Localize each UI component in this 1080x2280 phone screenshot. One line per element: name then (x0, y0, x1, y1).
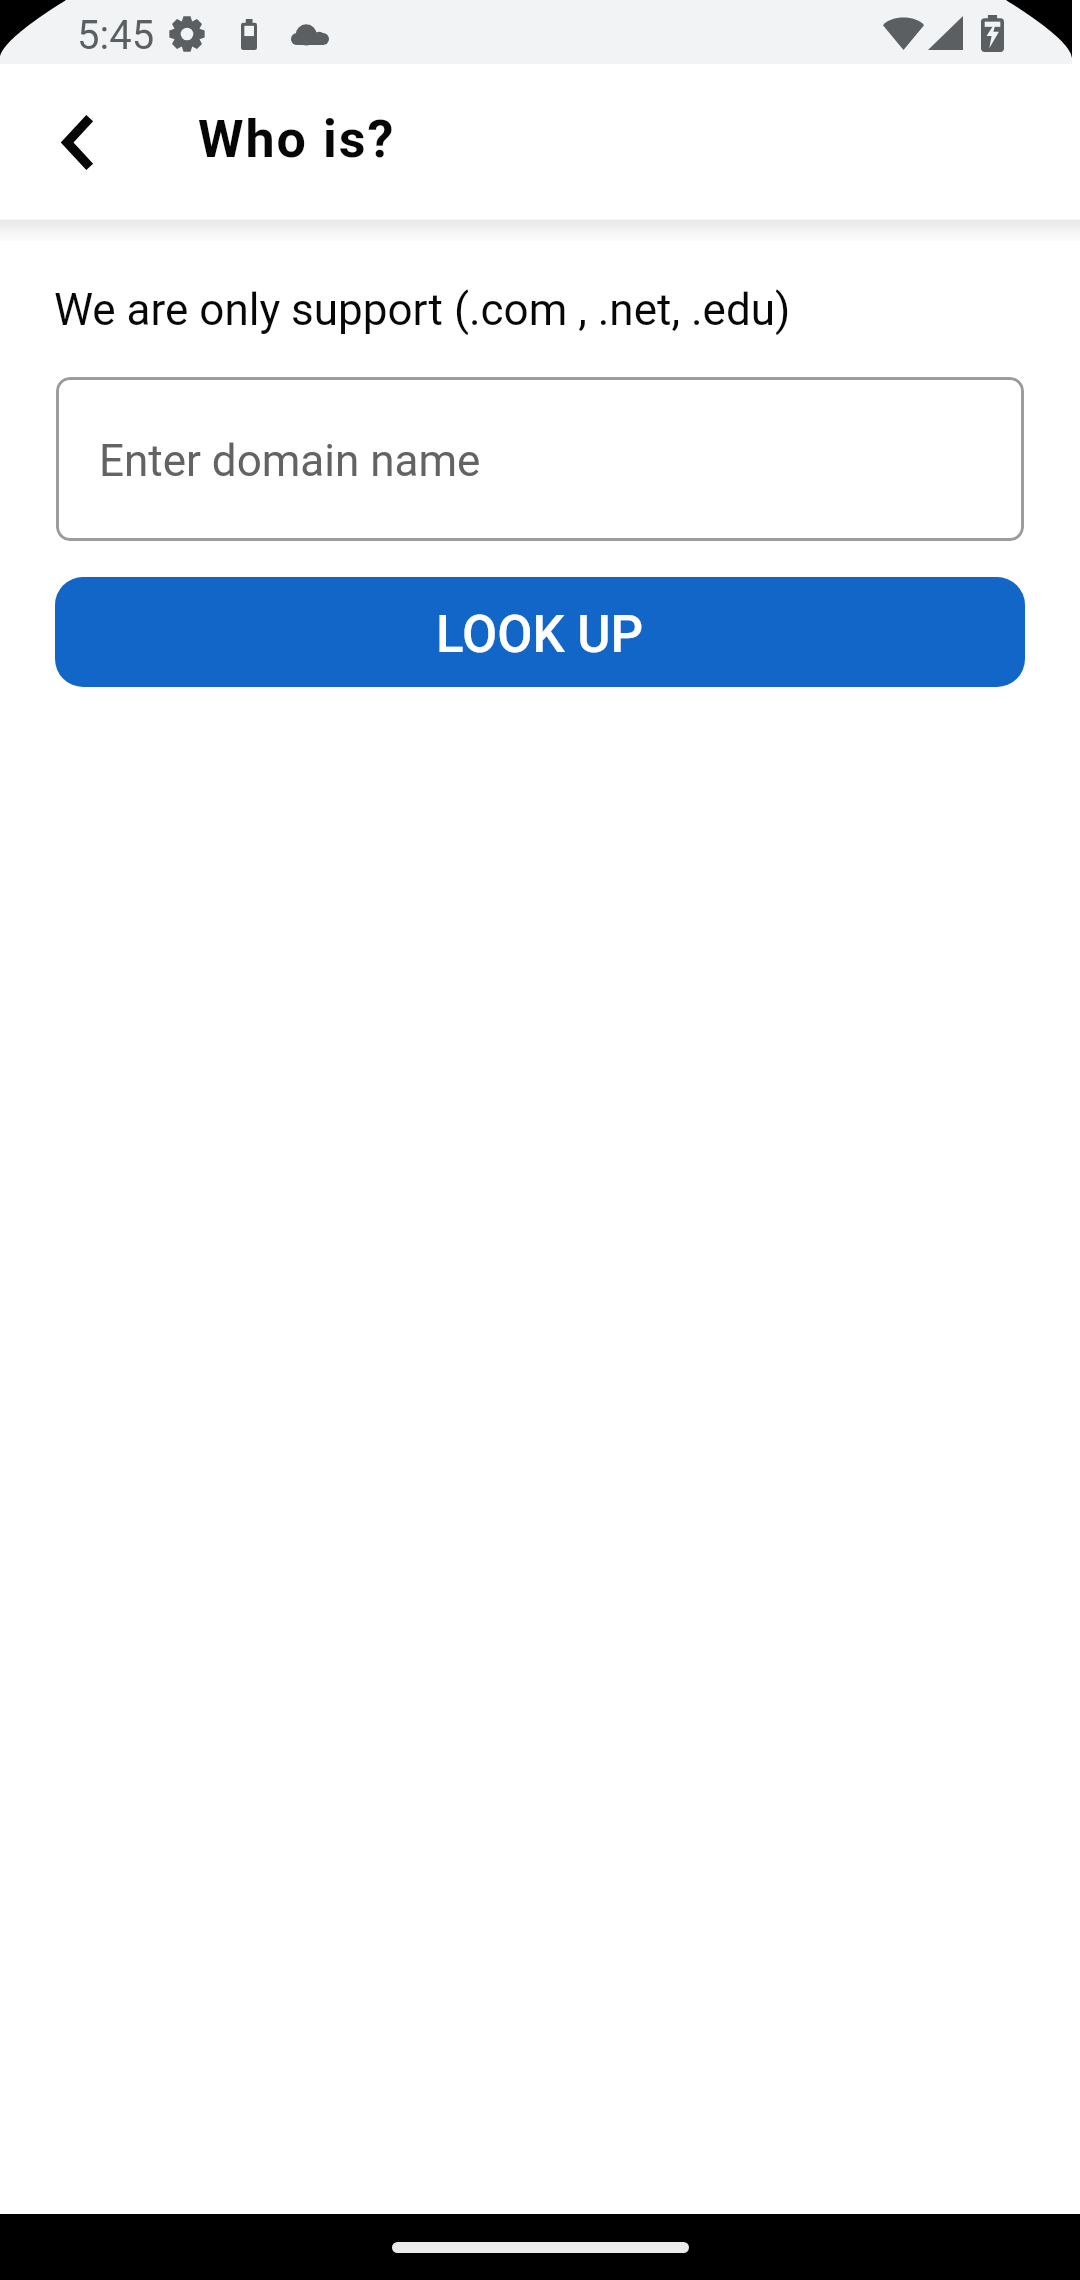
staticText: LOOK UP (436, 605, 644, 665)
button[interactable]: Back (0, 64, 152, 220)
staticText: Who is? (198, 109, 396, 170)
staticText: We are only support (.com , .net, .edu) (54, 284, 791, 336)
button[interactable]: Enter domain name (56, 377, 1024, 541)
staticText: 5:45 (77, 12, 155, 59)
button[interactable]: LOOK UP (55, 577, 1025, 687)
staticText: Enter domain name (99, 435, 481, 487)
